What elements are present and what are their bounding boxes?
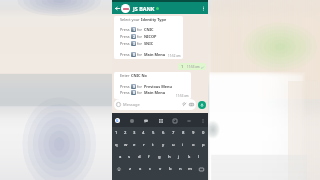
button[interactable]: h: [164, 151, 174, 163]
button[interactable]: Clipboard: [172, 118, 177, 123]
button[interactable]: k: [184, 151, 194, 163]
button[interactable]: x: [135, 163, 145, 175]
staticText: g: [158, 154, 161, 160]
staticText: 0: [133, 90, 135, 95]
button[interactable]: 0: [198, 127, 208, 139]
button[interactable]: Settings: [129, 118, 134, 123]
staticText: for: [136, 52, 144, 57]
button[interactable]: Translate: [186, 118, 191, 123]
staticText: for: [136, 41, 144, 46]
button[interactable]: j: [174, 151, 184, 163]
staticText: 2: [133, 34, 135, 39]
button[interactable]: 5: [148, 127, 158, 139]
staticText: 7: [172, 130, 175, 136]
button[interactable]: t: [148, 139, 158, 151]
button[interactable]: 9: [188, 127, 198, 139]
button[interactable]: q: [112, 139, 121, 151]
staticText: 1: [115, 130, 118, 136]
button[interactable]: l: [194, 151, 204, 163]
staticText: w: [124, 142, 128, 148]
button[interactable]: 3: [130, 127, 139, 139]
button[interactable]: s: [125, 151, 134, 163]
staticText: Message: [123, 102, 140, 107]
staticText: 0: [202, 130, 205, 136]
button[interactable]: r: [139, 139, 148, 151]
staticText: r: [143, 142, 145, 148]
staticText: JS BANK: [133, 5, 155, 12]
staticText: a: [119, 154, 122, 160]
staticText: NICOP: [144, 34, 157, 39]
staticText: y: [162, 142, 165, 148]
staticText: Press: [120, 90, 131, 95]
button[interactable]: 4: [139, 127, 148, 139]
button[interactable]: e: [130, 139, 139, 151]
button[interactable]: n: [175, 163, 185, 175]
staticText: 11:52 am: [168, 54, 181, 58]
staticText: p: [202, 142, 205, 148]
staticText: l: [198, 154, 200, 160]
button[interactable]: 1: [112, 127, 121, 139]
staticText: 5: [152, 130, 155, 136]
staticText: Press: [120, 34, 131, 39]
staticText: CNIC: [144, 27, 154, 32]
button[interactable]: p: [198, 139, 208, 151]
staticText: z: [129, 166, 131, 172]
button[interactable]: 6: [158, 127, 168, 139]
staticText: for: [136, 84, 144, 89]
button[interactable]: o: [188, 139, 198, 151]
staticText: 11:53 am: [187, 65, 200, 69]
button[interactable]: Backspace: [195, 163, 208, 175]
staticText: d: [138, 154, 141, 160]
button[interactable]: w: [121, 139, 130, 151]
staticText: b: [169, 166, 172, 172]
button[interactable]: Voice message: [198, 101, 206, 109]
button[interactable]: Back: [114, 5, 120, 11]
staticText: for: [136, 34, 144, 39]
staticText: 9: [133, 84, 135, 89]
button[interactable]: GIF: [158, 118, 163, 123]
other: Attach: [182, 102, 187, 107]
button[interactable]: Shift: [112, 163, 125, 175]
staticText: u: [172, 142, 175, 148]
button[interactable]: z: [125, 163, 135, 175]
staticText: Select your: [120, 17, 141, 22]
button[interactable]: m: [185, 163, 195, 175]
staticText: SNIC: [144, 41, 154, 46]
staticText: Main Menu: [144, 52, 166, 57]
staticText: 3: [133, 41, 135, 46]
staticText: v: [159, 166, 162, 172]
button[interactable]: 8: [178, 127, 188, 139]
staticText: q: [115, 142, 118, 148]
button[interactable]: 7: [168, 127, 178, 139]
staticText: Enter: [120, 73, 131, 78]
button[interactable]: c: [145, 163, 155, 175]
staticText: Previous Menu: [144, 84, 172, 89]
staticText: j: [178, 154, 180, 160]
button[interactable]: 2: [121, 127, 130, 139]
button[interactable]: Google: [115, 118, 120, 123]
staticText: 9: [192, 130, 195, 136]
staticText: c: [149, 166, 152, 172]
button[interactable]: b: [165, 163, 175, 175]
staticText: h: [168, 154, 171, 160]
button[interactable]: More options: [200, 5, 206, 11]
button[interactable]: Keyboard settings: [200, 118, 205, 123]
button[interactable]: d: [134, 151, 144, 163]
button[interactable]: v: [155, 163, 165, 175]
button[interactable]: i: [178, 139, 188, 151]
button[interactable]: a: [116, 151, 125, 163]
staticText: t: [152, 142, 154, 148]
staticText: Press: [120, 27, 131, 32]
button[interactable]: Stickers: [143, 118, 148, 123]
staticText: m: [188, 166, 192, 172]
staticText: 11:53 am: [176, 94, 189, 98]
button[interactable]: f: [144, 151, 154, 163]
staticText: 4: [142, 130, 145, 136]
staticText: i: [182, 142, 184, 148]
button[interactable]: Message: [114, 99, 196, 110]
staticText: x: [139, 166, 142, 172]
staticText: 2: [124, 130, 127, 136]
button[interactable]: g: [154, 151, 164, 163]
button[interactable]: y: [158, 139, 168, 151]
button[interactable]: u: [168, 139, 178, 151]
